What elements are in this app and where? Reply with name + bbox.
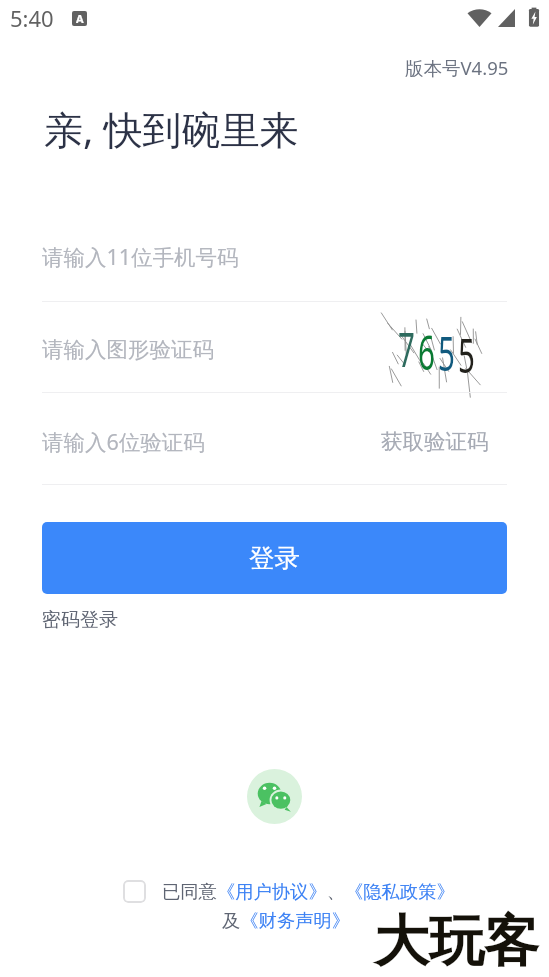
staticText: 版本号V4.95 (405, 55, 509, 80)
staticText: 5:40 (10, 3, 54, 33)
staticText: 7 (398, 317, 415, 381)
staticText: 请输入6位验证码 (42, 427, 205, 456)
staticText: 大玩客 (374, 907, 539, 976)
staticText: 请输入图形验证码 (42, 336, 214, 363)
button[interactable]: 及《财务声明》 (222, 909, 351, 932)
button[interactable]: 密码登录 (36, 601, 124, 639)
staticText: A (76, 11, 84, 26)
button[interactable]: 登录 (42, 522, 507, 594)
button[interactable]: 请输入6位验证码 (42, 399, 507, 484)
button[interactable]: 请输入图形验证码 (42, 307, 507, 392)
staticText: 请输入11位手机号码 (42, 242, 239, 271)
staticText: 6 (418, 320, 435, 384)
staticText: 密码登录 (42, 608, 118, 632)
staticText: 5 (458, 323, 475, 387)
button[interactable]: Agree to terms checkbox (123, 880, 146, 903)
button[interactable]: Sign in with WeChat (247, 769, 302, 824)
button[interactable]: 已同意《用户协议》、《隐私政策》 (162, 880, 455, 903)
button[interactable]: 请输入11位手机号码 (42, 212, 507, 301)
staticText: 亲, 快到碗里来 (44, 102, 299, 155)
staticText: 登录 (249, 542, 300, 574)
staticText: 5 (438, 321, 455, 385)
button[interactable]: 获取验证码 (381, 428, 489, 455)
